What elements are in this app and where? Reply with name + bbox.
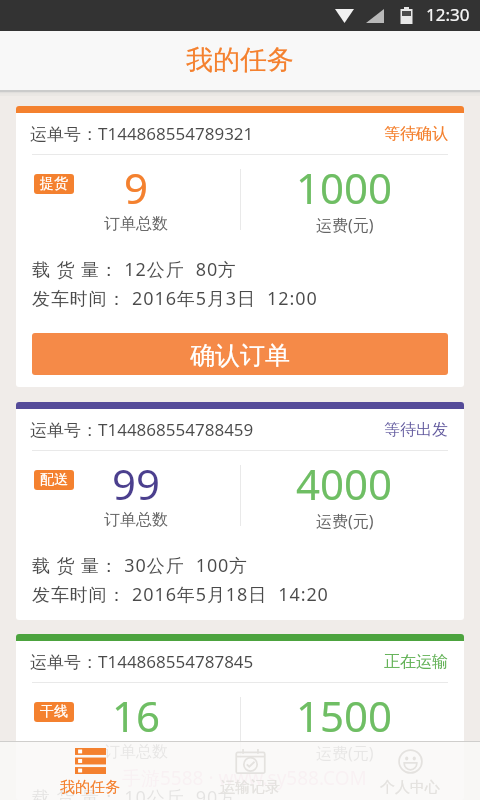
staticText: 正在运输: [384, 652, 448, 672]
staticText: 4000: [296, 455, 393, 512]
staticText: 订单总数: [104, 510, 168, 530]
button[interactable]: 我的任务: [0, 742, 160, 800]
staticText: 运单号：T144868554788459: [30, 418, 254, 441]
staticText: 运单号：T144868554787845: [30, 650, 254, 673]
staticText: 我的任务: [186, 43, 294, 77]
staticText: 手游5588 · www.sy588.COM: [122, 765, 367, 791]
staticText: 1000: [296, 159, 393, 216]
staticText: 载 货 量： 12公斤 80方: [32, 257, 237, 282]
staticText: 订单总数: [104, 214, 168, 234]
staticText: 16: [112, 687, 161, 744]
staticText: 等待出发: [384, 420, 448, 440]
staticText: 订单总数: [104, 742, 168, 762]
staticText: 运费(元): [316, 510, 374, 532]
staticText: 确认订单: [190, 340, 290, 371]
staticText: 个人中心: [380, 778, 440, 797]
staticText: 运输记录: [220, 778, 280, 797]
staticText: 运费(元): [316, 742, 374, 764]
button[interactable]: 个人中心: [320, 742, 480, 800]
staticText: 我的任务: [60, 778, 120, 797]
staticText: 发车时间： 2016年5月3日 12:00: [32, 286, 318, 311]
staticText: 运单号：T144868554789321: [30, 122, 254, 145]
staticText: 干线: [40, 703, 68, 721]
staticText: 1500: [296, 687, 393, 744]
staticText: 9: [124, 159, 149, 216]
staticText: 等待确认: [384, 124, 448, 144]
staticText: 载 货 量： 10公斤 90方: [32, 785, 237, 800]
staticText: 99: [112, 455, 161, 512]
staticText: 载 货 量： 30公斤 100方: [32, 553, 249, 578]
button[interactable]: 运单号：T144868554788459: [16, 402, 464, 620]
button[interactable]: 运单号：T144868554787845: [16, 634, 464, 800]
staticText: 12:30: [426, 3, 470, 26]
staticText: 发车时间： 2016年5月18日 14:20: [32, 582, 329, 607]
staticText: 运费(元): [316, 214, 374, 236]
button[interactable]: 运输记录: [160, 742, 320, 800]
staticText: 提货: [40, 175, 68, 193]
staticText: 配送: [40, 471, 68, 489]
button[interactable]: 确认订单: [32, 333, 448, 375]
button[interactable]: 运单号：T144868554789321: [16, 106, 464, 387]
